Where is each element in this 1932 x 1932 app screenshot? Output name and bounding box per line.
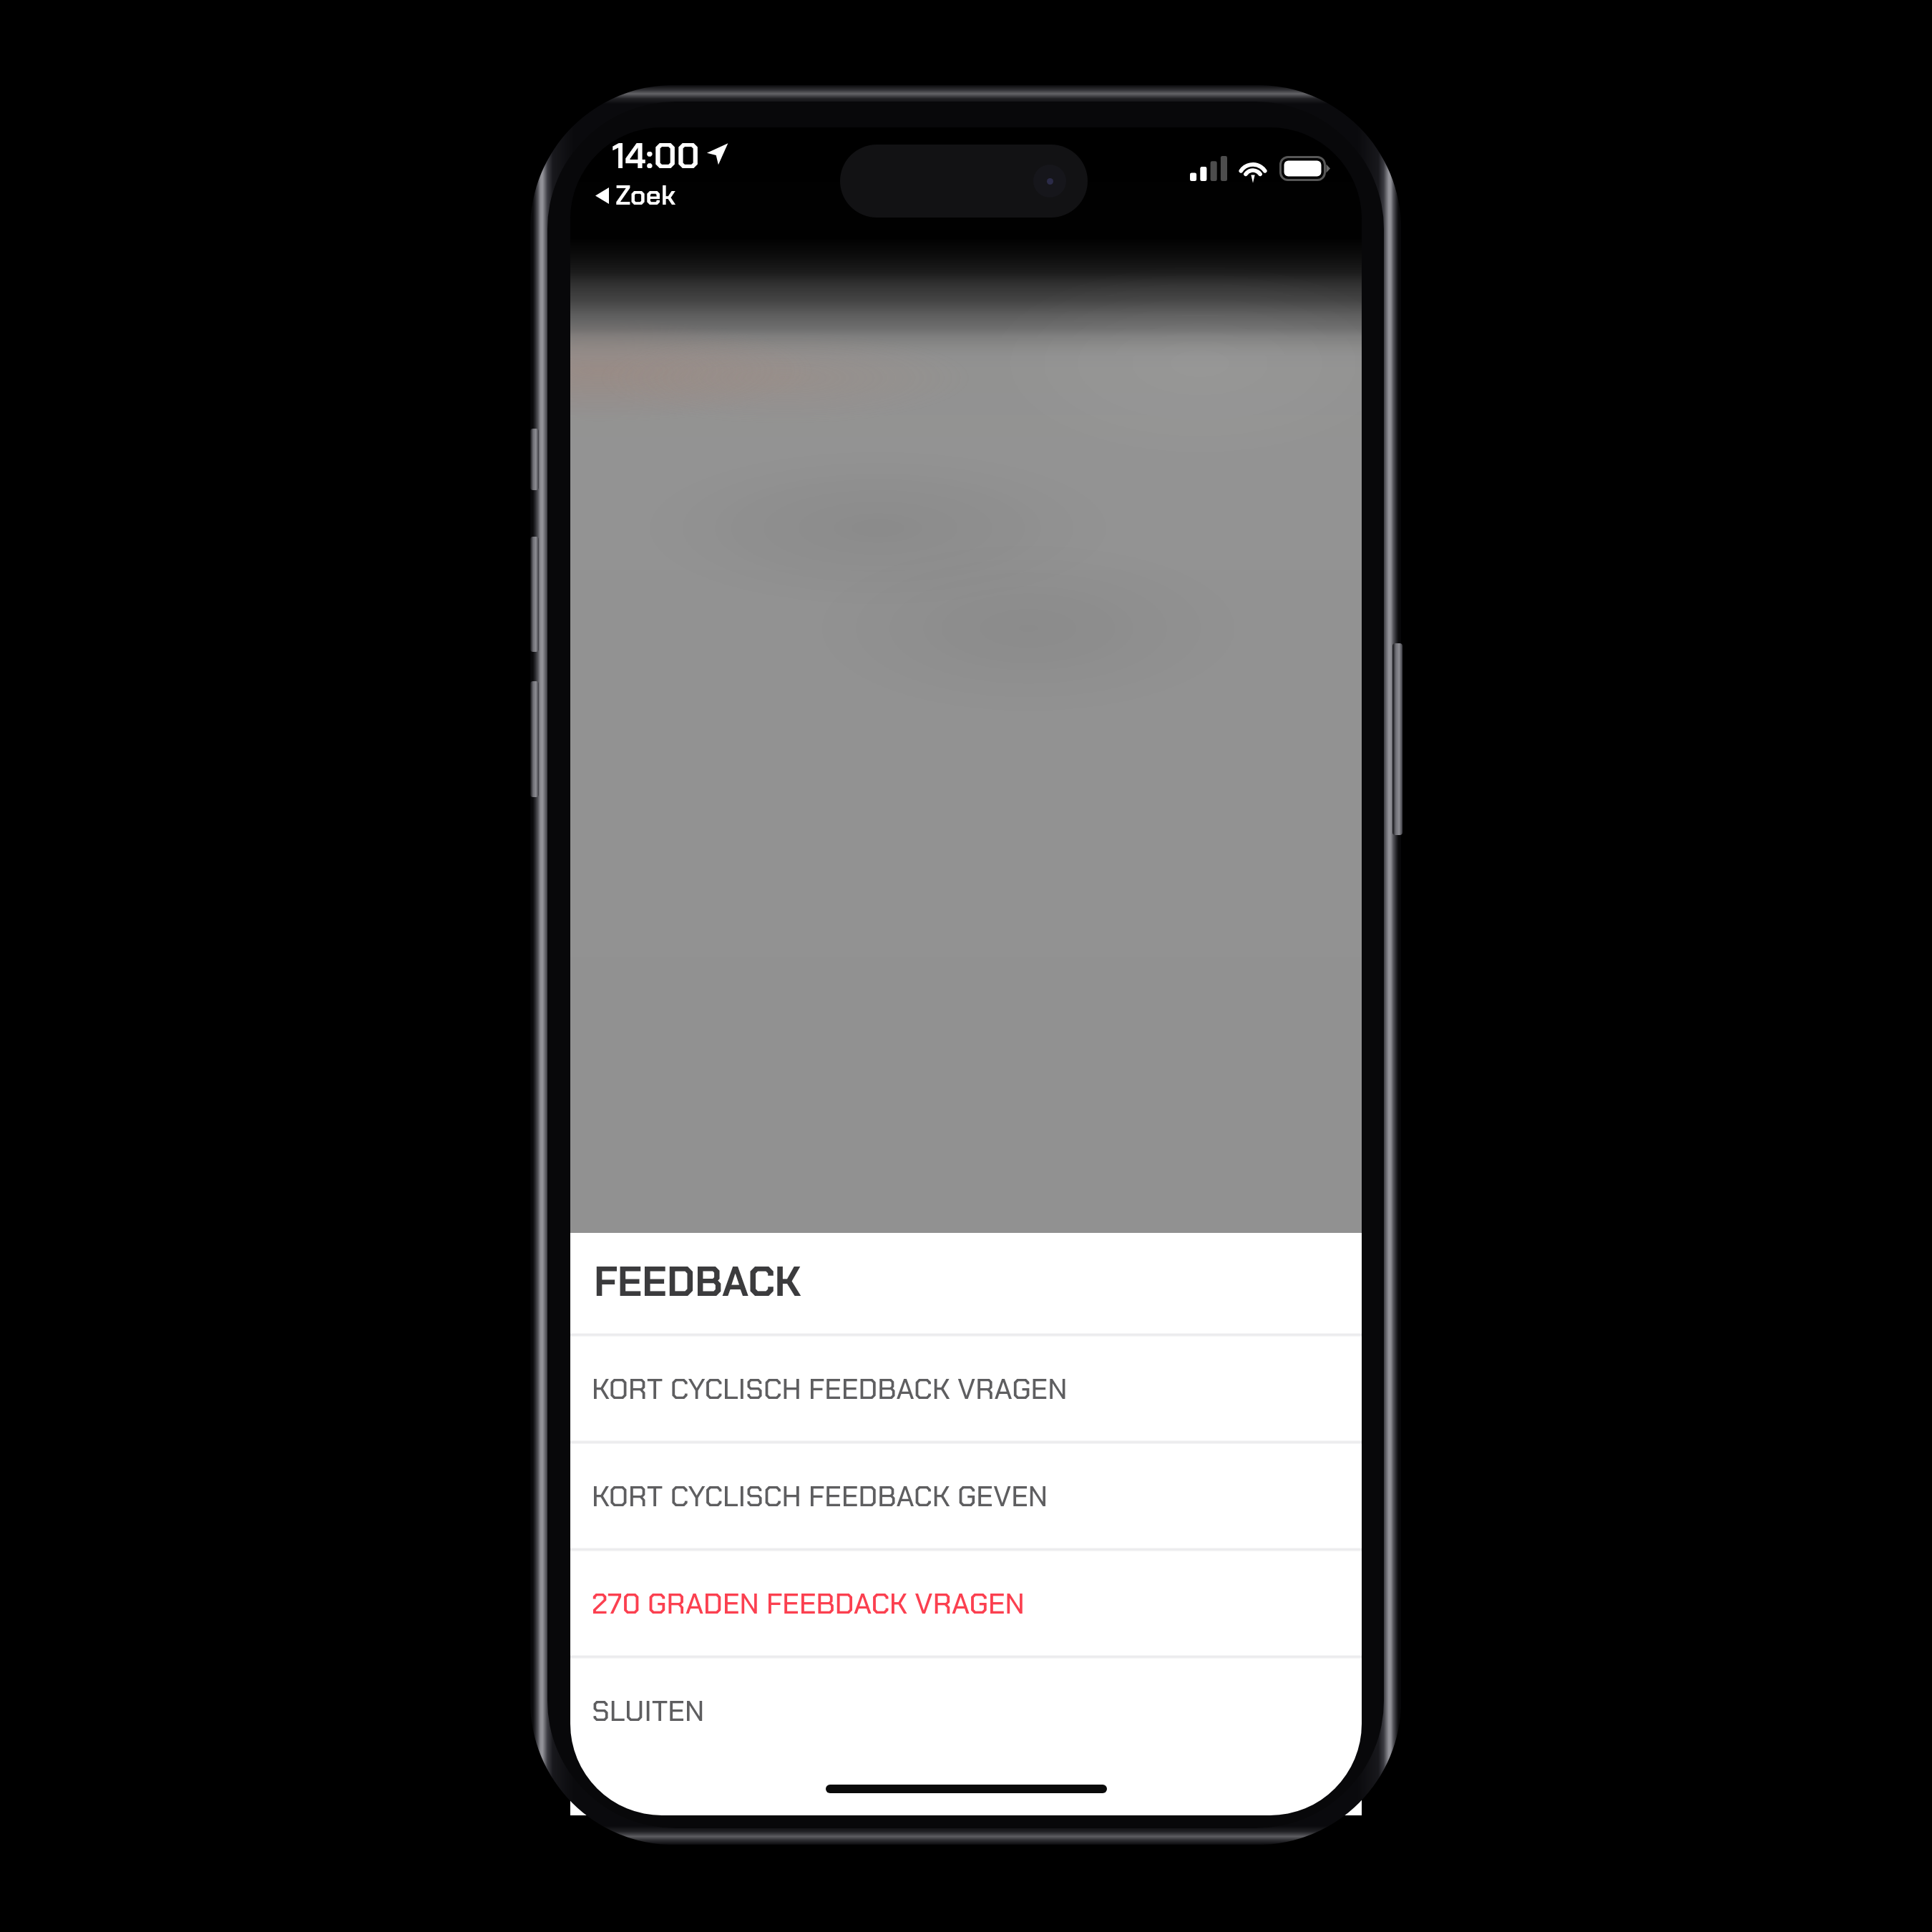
- button[interactable]: 270 GRADEN FEEBDACK VRAGEN: [570, 1551, 1362, 1655]
- staticText: Zoek: [615, 178, 676, 213]
- button[interactable]: KORT CYCLISCH FEEDBACK GEVEN: [570, 1444, 1362, 1548]
- other: Battery full: [1279, 156, 1330, 181]
- staticText: KORT CYCLISCH FEEDBACK VRAGEN: [592, 1370, 1068, 1407]
- staticText: 14:00: [612, 132, 700, 179]
- other: Cellular signal: [1190, 156, 1227, 181]
- other: Wi-Fi: [1236, 156, 1269, 181]
- other: Location services active: [706, 142, 728, 165]
- staticText: KORT CYCLISCH FEEDBACK GEVEN: [592, 1478, 1048, 1515]
- button[interactable]: Back to Zoek: [595, 178, 676, 213]
- button[interactable]: SLUITEN: [570, 1659, 1362, 1762]
- staticText: SLUITEN: [592, 1692, 705, 1729]
- staticText: 270 GRADEN FEEBDACK VRAGEN: [592, 1585, 1025, 1622]
- staticText: FEEDBACK: [594, 1255, 801, 1308]
- button[interactable]: KORT CYCLISCH FEEDBACK VRAGEN: [570, 1337, 1362, 1440]
